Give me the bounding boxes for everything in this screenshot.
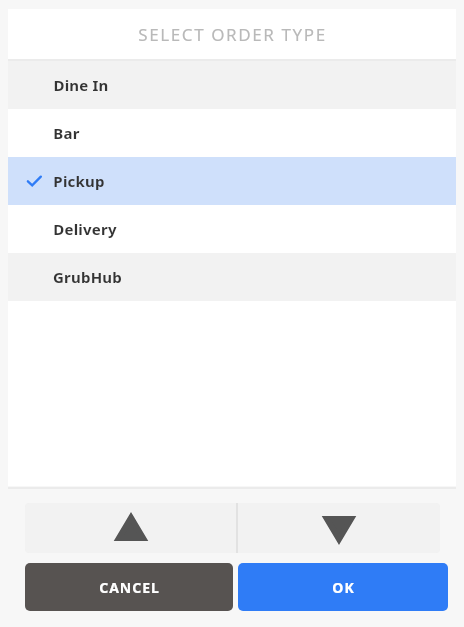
staticText: Pickup xyxy=(53,171,105,191)
button[interactable]: OK xyxy=(238,563,448,611)
button[interactable]: CANCEL xyxy=(25,563,233,611)
staticText: Delivery xyxy=(53,219,117,239)
staticText: Dine In xyxy=(53,75,109,95)
button[interactable]: Scroll down xyxy=(238,503,440,553)
button[interactable]: Scroll up xyxy=(25,503,236,553)
staticText: OK xyxy=(332,578,355,597)
staticText: GrubHub xyxy=(53,267,122,287)
button[interactable]: Pickup xyxy=(8,157,456,205)
button[interactable]: GrubHub xyxy=(8,253,456,301)
button[interactable]: Bar xyxy=(8,109,456,157)
button[interactable]: Dine In xyxy=(8,61,456,109)
staticText: Bar xyxy=(53,123,80,143)
staticText: SELECT ORDER TYPE xyxy=(138,23,327,46)
staticText: CANCEL xyxy=(99,578,160,597)
button[interactable]: Delivery xyxy=(8,205,456,253)
